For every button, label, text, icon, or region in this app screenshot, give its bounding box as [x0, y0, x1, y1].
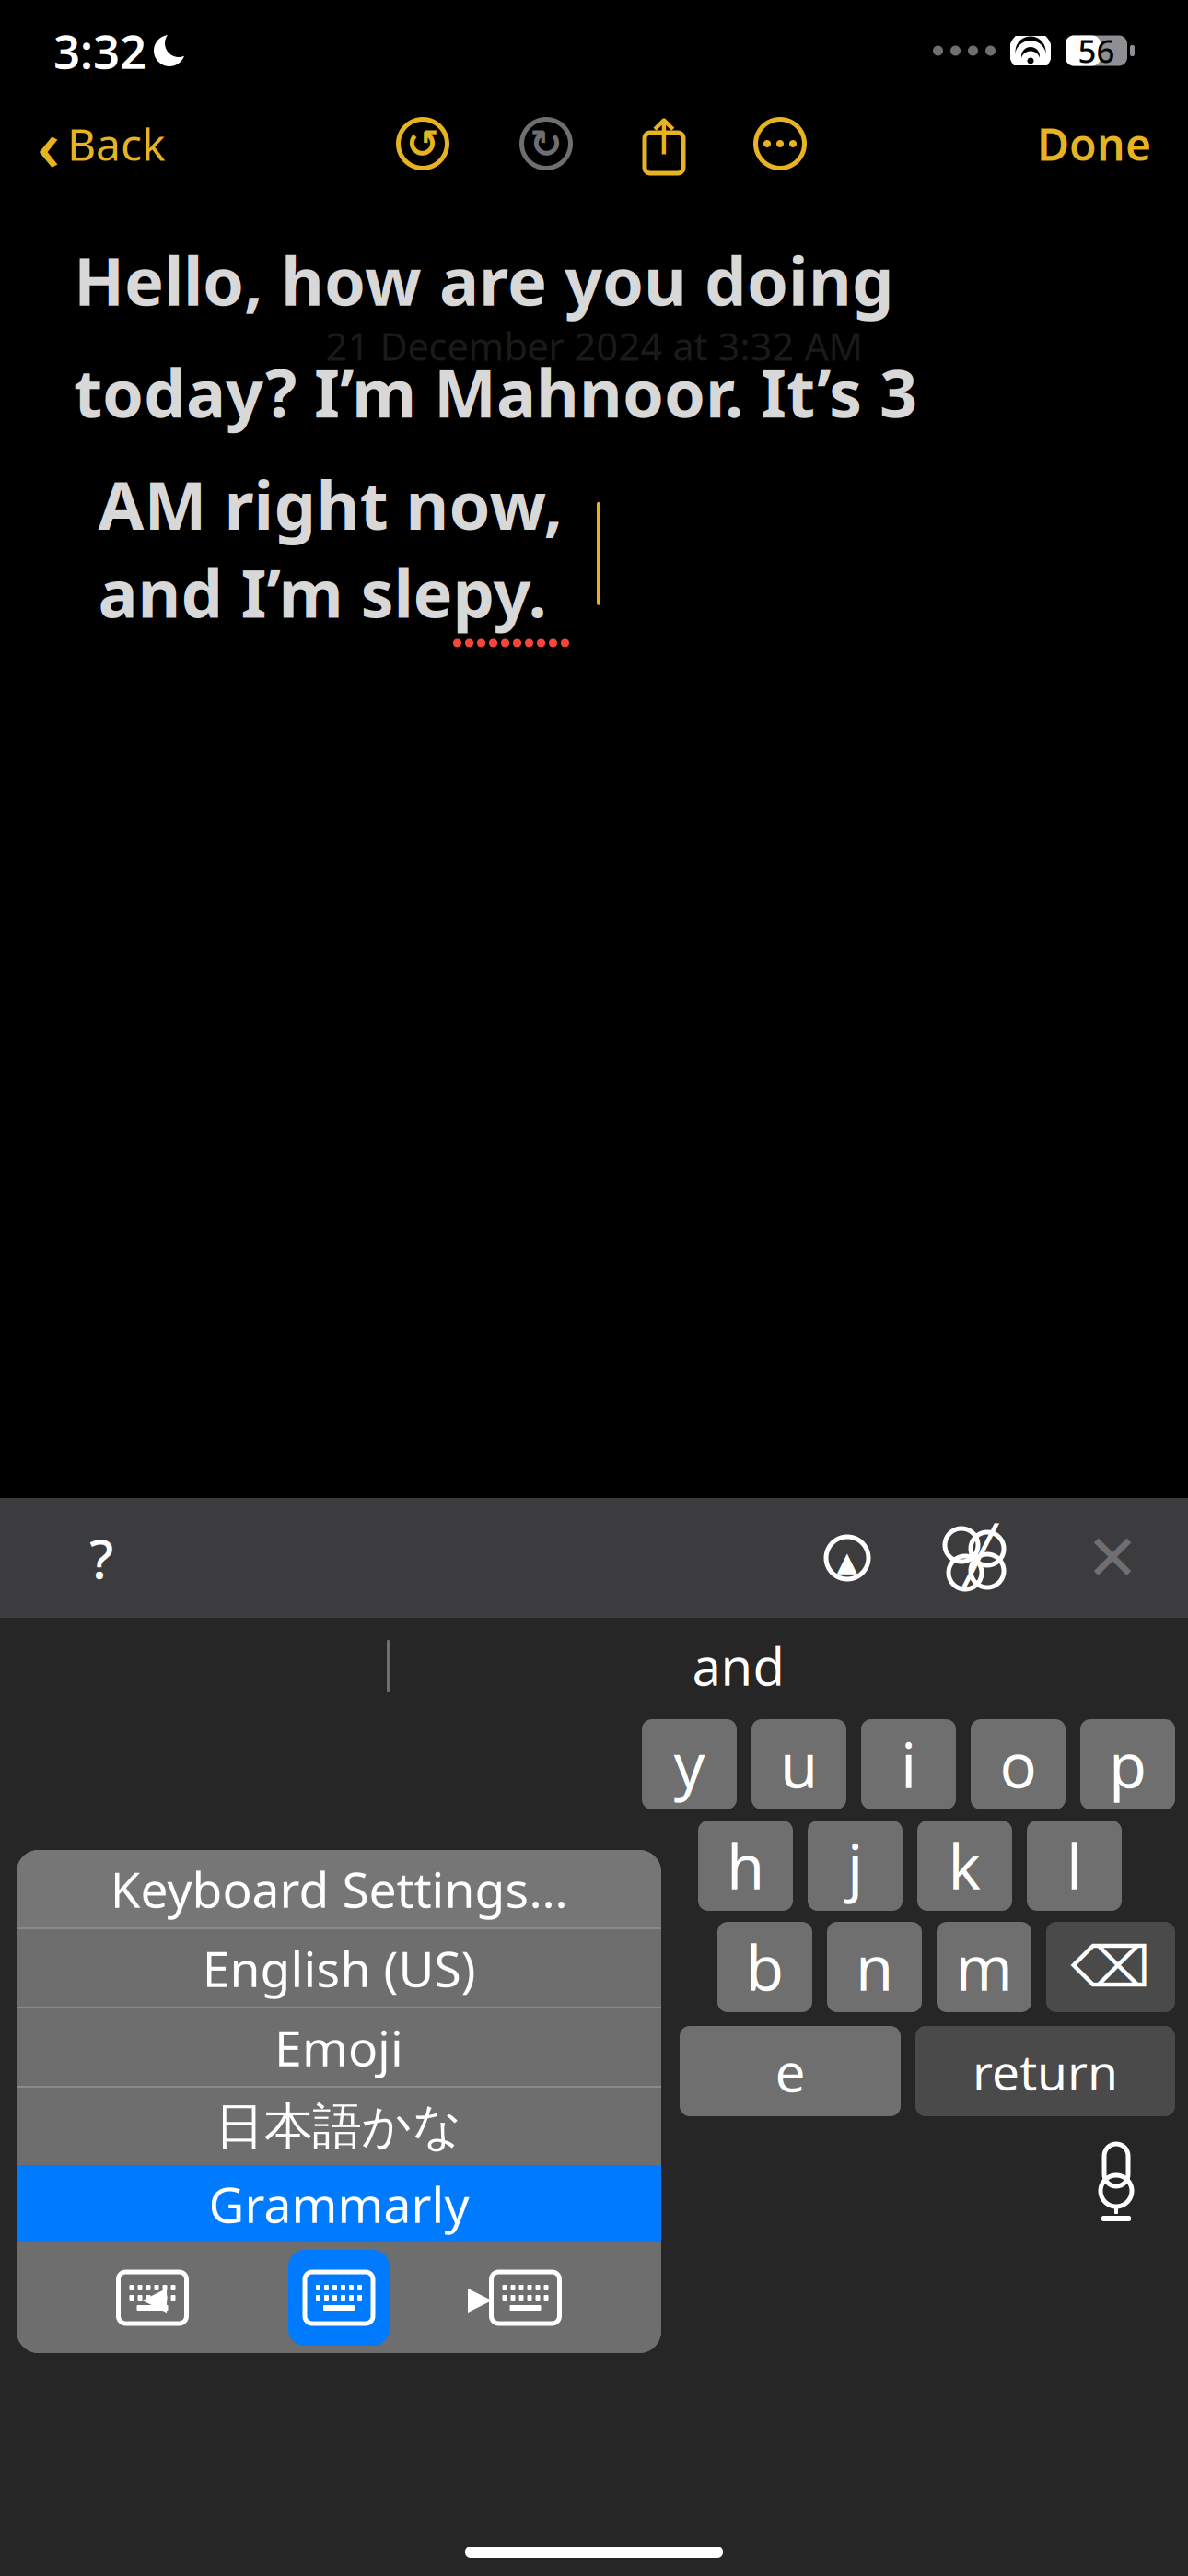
staticText: ✕ — [1086, 1522, 1139, 1594]
button[interactable]: i — [861, 1719, 956, 1809]
staticText: return — [973, 2039, 1118, 2104]
button[interactable]: Share — [638, 114, 690, 173]
button[interactable]: o — [971, 1719, 1066, 1809]
staticText: ▶ — [467, 2280, 492, 2316]
staticText: j — [847, 1825, 863, 1906]
button[interactable]: ‹ — [31, 96, 171, 191]
staticText: today? I’m Mahnoor. It’s 3 — [74, 348, 917, 436]
staticText: y — [674, 1724, 705, 1805]
button[interactable]: p — [1080, 1719, 1175, 1809]
staticText: English (US) — [202, 1935, 476, 2001]
button[interactable]: h — [698, 1821, 793, 1911]
button[interactable]: l — [1027, 1821, 1122, 1911]
staticText: b — [746, 1926, 784, 2008]
staticText: 日本語かな — [215, 2096, 463, 2157]
staticText: ╱ — [963, 1524, 997, 1588]
button[interactable]: Redo — [520, 118, 572, 170]
button[interactable]: Grammarly — [17, 2165, 661, 2242]
staticText: l — [1066, 1825, 1082, 1906]
button[interactable]: Dock keyboard right — [489, 2269, 562, 2326]
button[interactable]: Dock keyboard — [288, 2250, 390, 2346]
staticText: and — [692, 1631, 784, 1700]
button[interactable]: m — [937, 1922, 1031, 2012]
button[interactable]: Delete — [1046, 1922, 1175, 2012]
button[interactable]: Next keyboard — [44, 2159, 105, 2219]
staticText: 56 — [1078, 29, 1115, 72]
button[interactable]: Dictate — [1089, 2155, 1144, 2223]
staticText: k — [948, 1825, 981, 1906]
button[interactable]: Undo — [397, 118, 448, 170]
button[interactable]: y — [642, 1719, 737, 1809]
staticText: Done — [1037, 114, 1151, 173]
button[interactable]: Markup — [821, 1528, 873, 1588]
button[interactable]: u — [751, 1719, 846, 1809]
button[interactable]: return — [915, 2026, 1175, 2116]
button[interactable]: Scribble — [941, 1525, 1007, 1591]
staticText: Emoji — [274, 2015, 403, 2080]
button[interactable]: English (US) — [17, 1929, 661, 2007]
staticText: i — [901, 1724, 916, 1805]
staticText: e — [775, 2035, 805, 2107]
staticText: ◀ — [142, 2280, 167, 2316]
staticText: o — [1000, 1724, 1037, 1805]
staticText: u — [780, 1724, 818, 1805]
staticText: p — [1109, 1724, 1147, 1805]
staticText: ? — [89, 1522, 113, 1594]
staticText: ▲ — [837, 1546, 858, 1577]
button[interactable]: Emoji — [17, 2008, 661, 2086]
staticText: Back — [67, 114, 166, 173]
button[interactable]: j — [808, 1821, 903, 1911]
staticText: 3:32 — [53, 20, 146, 82]
staticText: ‹ — [37, 96, 60, 191]
button[interactable]: b — [717, 1922, 812, 2012]
staticText: h — [727, 1825, 764, 1906]
button[interactable]: Dock keyboard left — [116, 2269, 189, 2326]
button[interactable]: Close — [1076, 1514, 1149, 1602]
staticText: Keyboard Settings… — [110, 1856, 568, 1921]
button[interactable]: Keyboard Settings… — [17, 1850, 661, 1927]
staticText: AM right now, and I’m slepy. — [98, 460, 563, 636]
button[interactable]: k — [917, 1821, 1012, 1911]
staticText: ↺ — [406, 121, 439, 166]
staticText: ⌫ — [1071, 1935, 1151, 1999]
staticText: Hello, how are you doing — [74, 236, 894, 324]
button[interactable]: More — [754, 118, 806, 170]
button[interactable]: 日本語かな — [17, 2088, 661, 2165]
staticText: m — [955, 1926, 1013, 2008]
button[interactable]: e — [680, 2026, 901, 2116]
staticText: ↻ — [530, 121, 563, 166]
staticText: ↑ — [643, 109, 685, 165]
button[interactable]: Help — [64, 1514, 138, 1602]
staticText: 21 December 2024 at 3:32 AM — [326, 321, 862, 371]
button[interactable]: Done — [1031, 114, 1157, 173]
staticText: n — [856, 1926, 893, 2008]
staticText: Grammarly — [209, 2171, 469, 2236]
button[interactable]: n — [827, 1922, 922, 2012]
